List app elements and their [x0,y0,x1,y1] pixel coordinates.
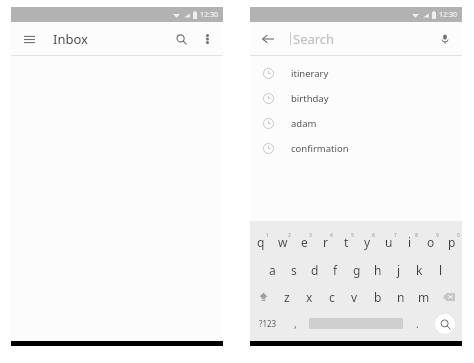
button[interactable]: confirmation [250,136,462,161]
staticText: g [353,262,361,278]
button[interactable]: w [272,228,294,256]
staticText: e [301,234,308,250]
staticText: f [333,262,338,278]
button[interactable]: z [276,283,298,310]
button[interactable]: Voice search [435,29,455,49]
button[interactable]: More options [198,30,216,48]
button[interactable]: Open navigation drawer [18,28,40,50]
button[interactable]: r [315,228,336,256]
staticText: v [351,289,358,305]
staticText: y [364,234,371,250]
staticText: m [418,289,430,305]
button[interactable]: Search [435,314,455,334]
button[interactable]: x [298,283,320,310]
staticText: w [278,234,288,250]
staticText: x [306,289,313,305]
button[interactable]: h [367,256,388,283]
staticText: 6 [372,232,375,239]
staticText: 3 [309,232,312,239]
button[interactable]: l [430,256,451,283]
button[interactable]: i [399,228,420,256]
button[interactable]: Search [170,28,192,50]
button[interactable]: n [389,283,412,310]
staticText: 9 [436,232,439,239]
staticText: c [329,289,335,305]
staticText: z [284,289,290,305]
button[interactable]: Back [257,28,279,50]
staticText: Search [293,30,335,48]
button[interactable]: u [378,228,399,256]
staticText: 1 [266,232,269,239]
staticText: u [385,234,393,250]
staticText: adam [291,117,317,130]
staticText: j [397,262,401,278]
button[interactable]: itinerary [250,61,462,86]
staticText: birthday [291,92,329,105]
button[interactable]: g [346,256,367,283]
staticText: 12:30 [439,10,457,20]
staticText: h [374,262,382,278]
staticText: q [257,234,265,250]
button[interactable]: o [420,228,441,256]
button[interactable]: a [262,256,283,283]
button[interactable]: j [388,256,409,283]
staticText: d [311,262,319,278]
button[interactable]: k [409,256,430,283]
button[interactable]: ?123 [250,310,285,337]
button[interactable]: b [366,283,389,310]
staticText: 12:30 [200,10,218,20]
staticText: 8 [415,232,418,239]
button[interactable]: f [325,256,346,283]
staticText: 4 [330,232,333,239]
staticText: 7 [394,232,397,239]
staticText: , [294,317,297,331]
staticText: itinerary [291,67,329,80]
staticText: r [323,234,328,250]
button[interactable]: birthday [250,86,462,111]
button[interactable]: Delete [435,283,462,310]
staticText: t [344,234,349,250]
staticText: p [448,234,456,250]
button[interactable]: e [294,228,315,256]
staticText: Inbox [53,30,88,48]
staticText: b [374,289,382,305]
button[interactable]: s [283,256,304,283]
staticText: ?123 [259,318,277,329]
button[interactable]: adam [250,111,462,136]
button[interactable]: m [412,283,435,310]
button[interactable]: v [343,283,366,310]
staticText: 0 [457,232,460,239]
button[interactable]: c [320,283,343,310]
button[interactable]: t [336,228,357,256]
staticText: o [427,234,435,250]
staticText: 2 [288,232,291,239]
staticText: s [291,262,297,278]
button[interactable]: . [407,310,427,337]
button[interactable]: Shift [250,283,276,310]
button[interactable]: p [441,228,462,256]
staticText: . [416,317,419,331]
staticText: confirmation [291,142,349,155]
button[interactable]: y [357,228,378,256]
staticText: i [408,234,412,250]
button[interactable]: q [250,228,272,256]
staticText: a [269,262,276,278]
button[interactable]: d [304,256,325,283]
staticText: k [416,262,423,278]
staticText: l [439,262,443,278]
button[interactable]: , [285,310,305,337]
staticText: n [397,289,405,305]
staticText: 5 [351,232,354,239]
